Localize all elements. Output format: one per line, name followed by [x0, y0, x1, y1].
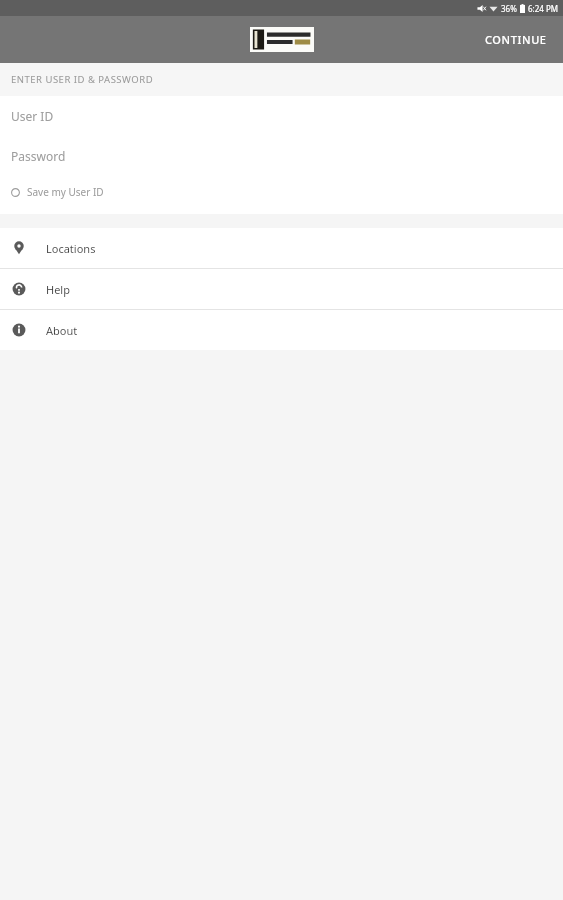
- staticText: Password: [11, 148, 66, 164]
- staticText: Locations: [46, 241, 96, 256]
- staticText: CONTINUE: [485, 32, 547, 47]
- button[interactable]: Password: [0, 136, 563, 176]
- button[interactable]: Help: [0, 269, 563, 309]
- staticText: 36%: [501, 3, 517, 14]
- button[interactable]: CONTINUE: [469, 20, 563, 59]
- button[interactable]: Locations: [0, 228, 563, 268]
- staticText: User ID: [11, 108, 54, 124]
- staticText: About: [46, 323, 78, 338]
- button[interactable]: About: [0, 310, 563, 350]
- staticText: Save my User ID: [27, 185, 104, 199]
- button[interactable]: Buckwood Capital Bank logo: [250, 27, 314, 52]
- staticText: Help: [46, 282, 70, 297]
- staticText: 6:24 PM: [528, 3, 559, 14]
- staticText: ENTER USER ID & PASSWORD: [11, 73, 154, 86]
- button[interactable]: Save my User ID: [0, 176, 563, 208]
- button[interactable]: User ID: [0, 96, 563, 136]
